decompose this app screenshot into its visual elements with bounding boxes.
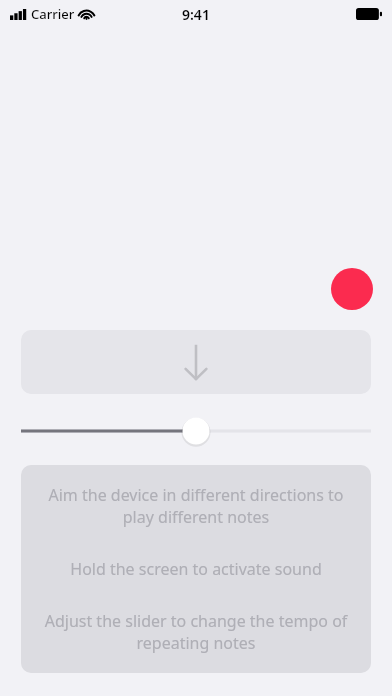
- staticText: 9:41: [182, 5, 210, 24]
- button[interactable]: Note indicator: [331, 268, 373, 310]
- button[interactable]: Tempo slider: [21, 417, 371, 445]
- button[interactable]: Aim the device in different directions t…: [21, 465, 371, 673]
- staticText: Adjust the slider to change the tempo of…: [35, 610, 357, 654]
- staticText: Aim the device in different directions t…: [35, 484, 357, 528]
- staticText: Hold the screen to activate sound: [35, 558, 357, 580]
- button[interactable]: Direction down: [21, 330, 371, 394]
- staticText: Carrier: [31, 5, 75, 23]
